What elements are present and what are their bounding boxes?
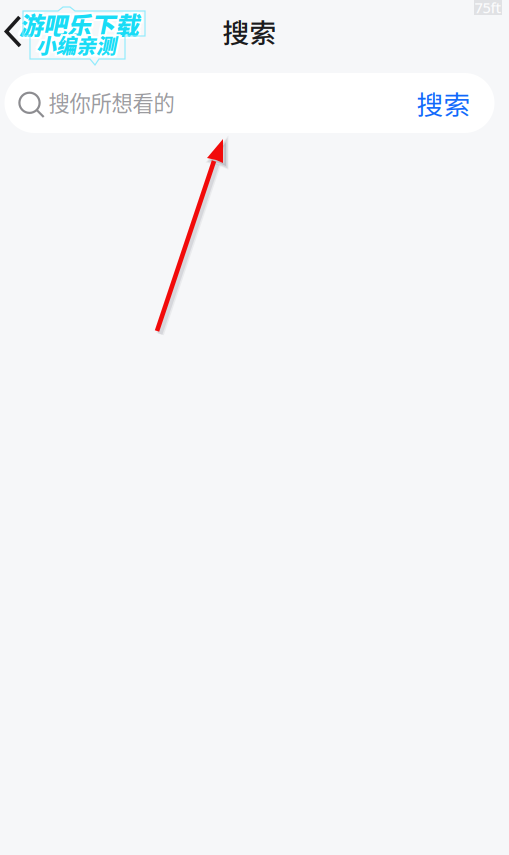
staticText: 游吧乐下载 [19, 7, 139, 41]
staticText: 小编亲测 [36, 32, 116, 61]
staticText: 小编亲测 [38, 32, 118, 61]
staticText: 游吧乐下载 [17, 9, 137, 43]
staticText: 游吧乐下载 [19, 9, 139, 43]
button[interactable]: Back [0, 5, 40, 57]
staticText: 小编亲测 [34, 28, 114, 57]
staticText: 75ft [474, 0, 501, 17]
staticText: 搜索 [416, 84, 470, 122]
staticText: 游吧乐下载 [21, 9, 141, 43]
staticText: 小编亲测 [34, 30, 114, 59]
staticText: 游吧乐下载 [21, 7, 141, 41]
staticText: 小编亲测 [34, 32, 114, 61]
staticText: 小编亲测 [36, 30, 116, 59]
button[interactable]: 搜索 [407, 73, 479, 133]
staticText: 搜你所想看的 [48, 87, 174, 117]
staticText: 游吧乐下载 [21, 5, 141, 39]
staticText: 小编亲测 [38, 28, 118, 57]
staticText: 搜索 [222, 12, 276, 50]
staticText: 游吧乐下载 [17, 7, 137, 41]
staticText: 小编亲测 [36, 28, 116, 57]
staticText: 游吧乐下载 [19, 5, 139, 39]
staticText: 游吧乐下载 [17, 5, 137, 39]
staticText: 小编亲测 [38, 30, 118, 59]
button[interactable]: 搜你所想看的 [4, 73, 404, 133]
